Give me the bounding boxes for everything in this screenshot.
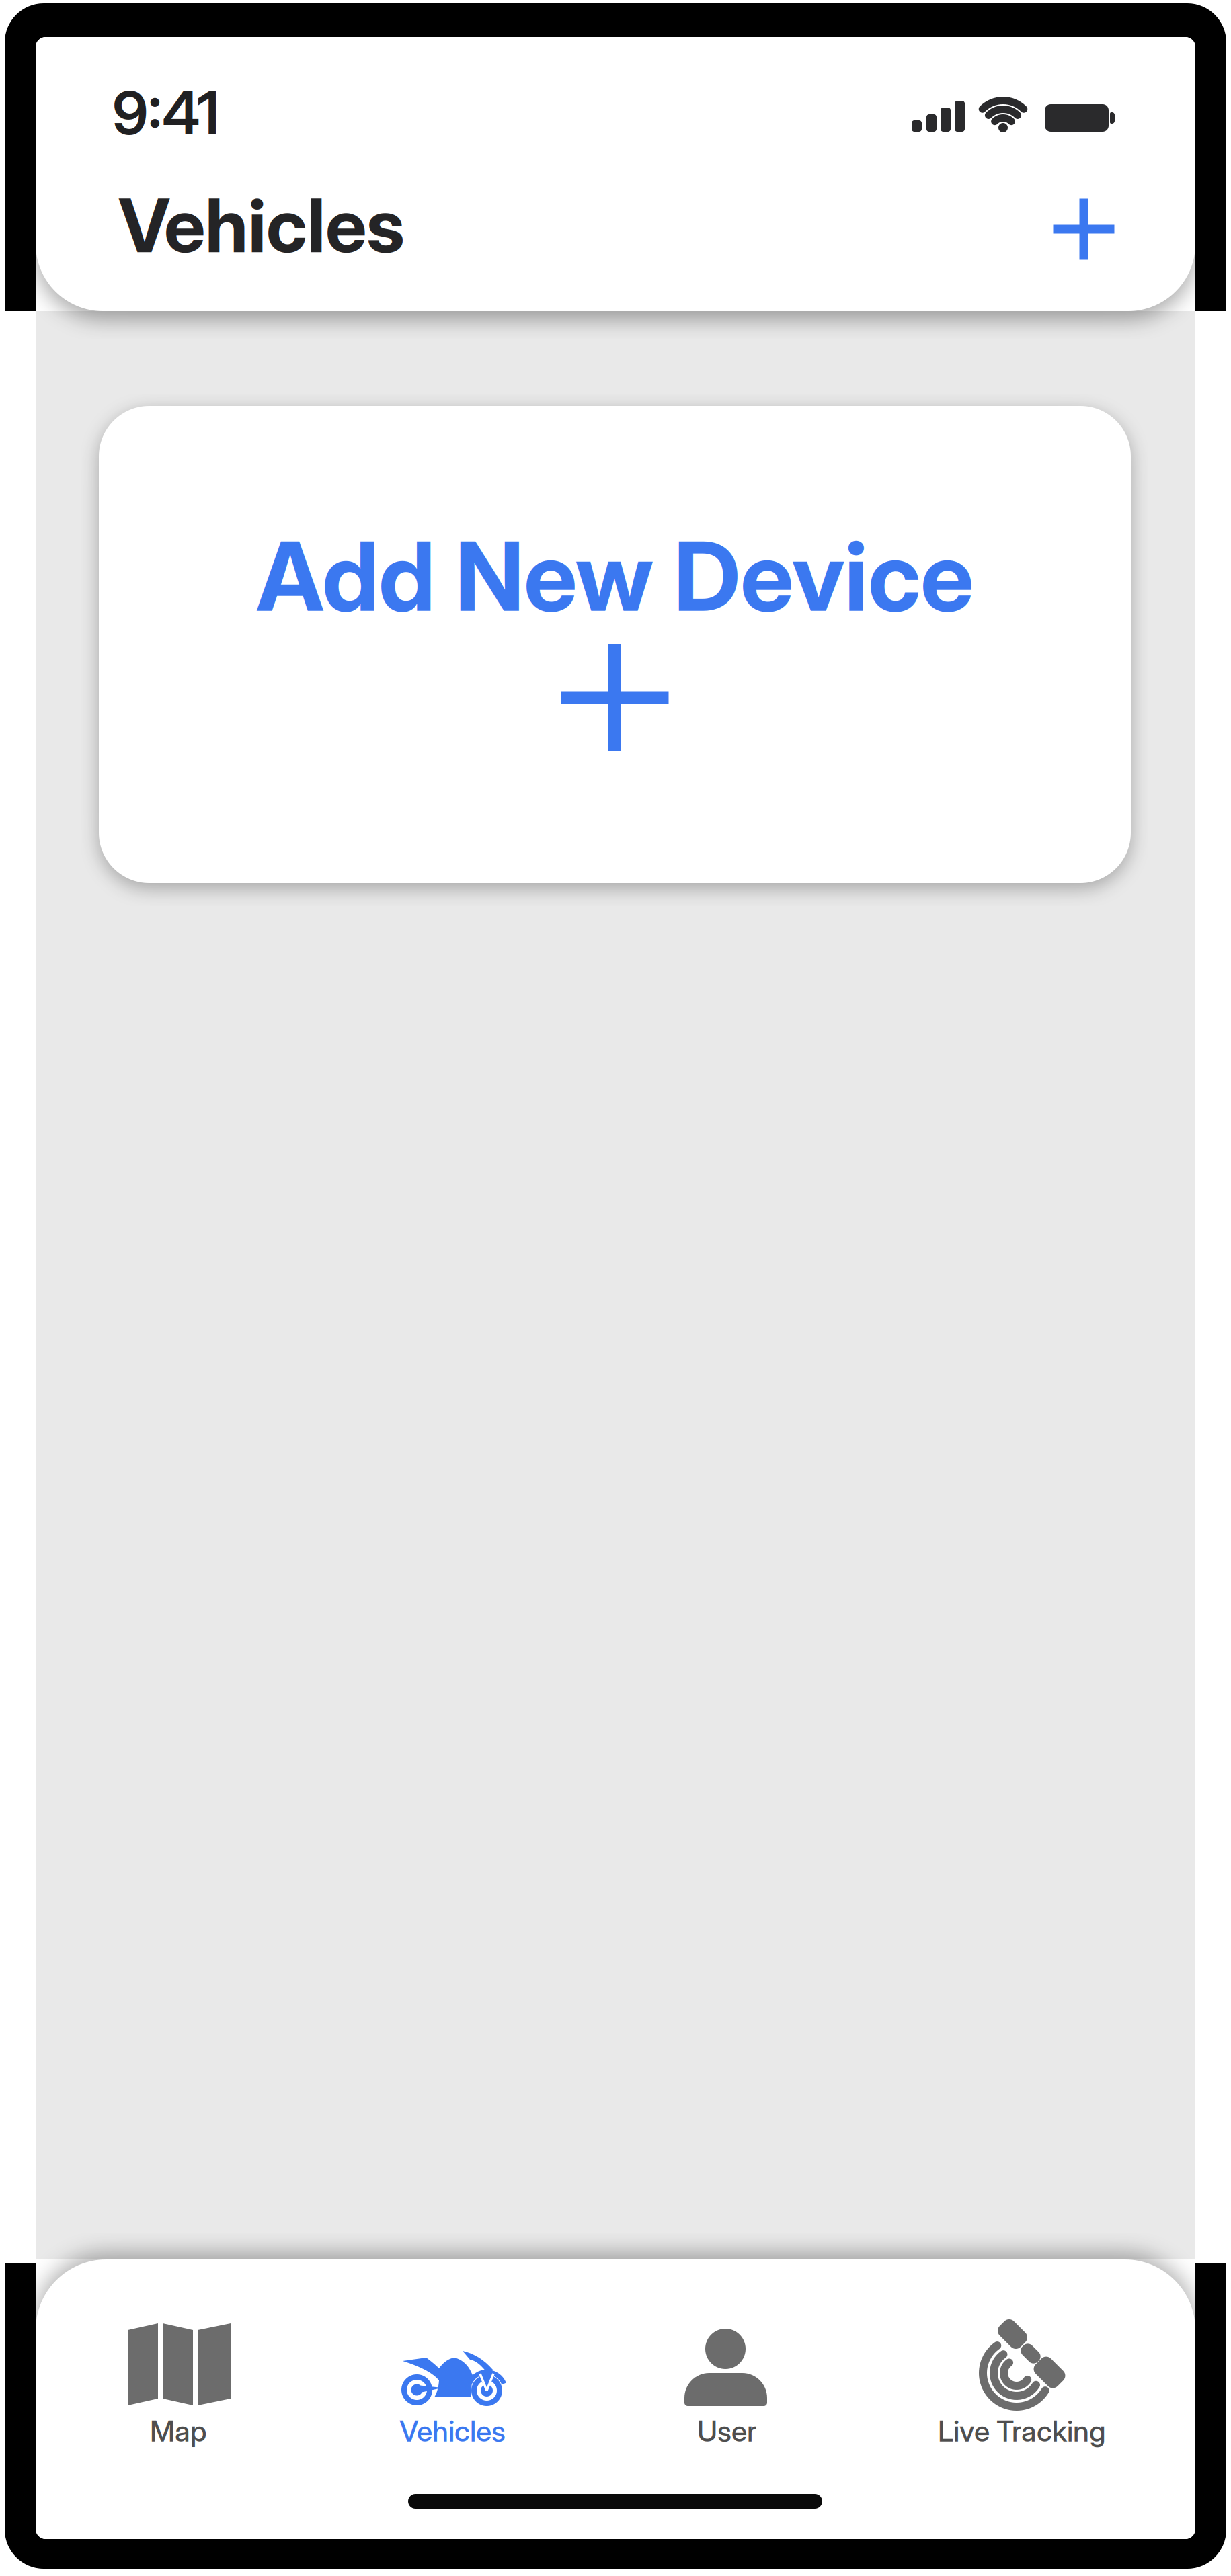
button[interactable]: Add New Device xyxy=(99,406,1131,883)
staticText: User xyxy=(697,2414,756,2448)
staticText: Vehicles xyxy=(399,2414,506,2448)
staticText: Live Tracking xyxy=(938,2414,1106,2448)
staticText: Map xyxy=(150,2414,207,2448)
button[interactable]: Live Tracking xyxy=(921,2305,1150,2460)
staticText: Add New Device xyxy=(256,520,974,632)
staticText: 9:41 xyxy=(112,78,219,148)
button[interactable]: Vehicles xyxy=(376,2305,531,2460)
button[interactable]: Add xyxy=(1045,191,1123,268)
button[interactable]: User xyxy=(666,2305,787,2460)
staticText: Vehicles xyxy=(118,182,405,269)
button[interactable]: Map xyxy=(108,2305,249,2460)
